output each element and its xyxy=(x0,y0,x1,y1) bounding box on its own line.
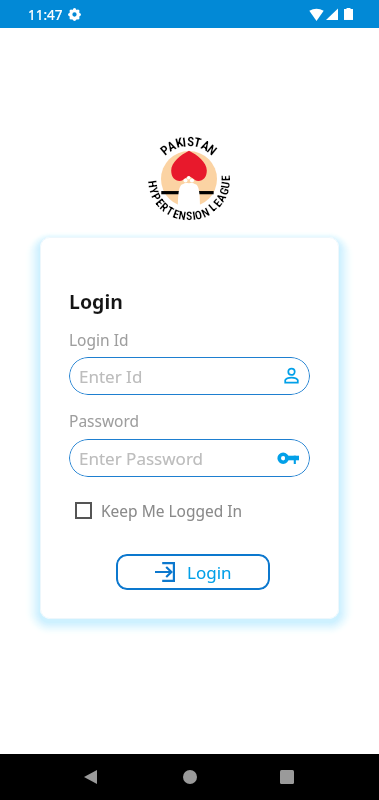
button[interactable]: Keep Me Logged In xyxy=(75,500,243,521)
staticText: Password xyxy=(69,410,140,431)
staticText: Keep Me Logged In xyxy=(101,500,243,521)
other: Password xyxy=(278,452,299,464)
button[interactable]: Enter Password xyxy=(69,439,310,477)
staticText: Login xyxy=(187,561,232,584)
other: Login xyxy=(155,562,175,582)
staticText: 11:47 xyxy=(28,6,63,24)
button[interactable]: Back xyxy=(67,754,113,800)
staticText: Login xyxy=(69,288,123,315)
button[interactable]: Login xyxy=(116,554,270,590)
button[interactable]: Home xyxy=(167,754,213,800)
staticText: Login Id xyxy=(69,329,129,350)
button[interactable]: Recents xyxy=(264,754,310,800)
staticText: Enter Id xyxy=(79,365,143,388)
staticText: Enter Password xyxy=(79,447,204,470)
other: Person xyxy=(284,368,299,384)
button[interactable]: Enter Id xyxy=(69,357,310,395)
